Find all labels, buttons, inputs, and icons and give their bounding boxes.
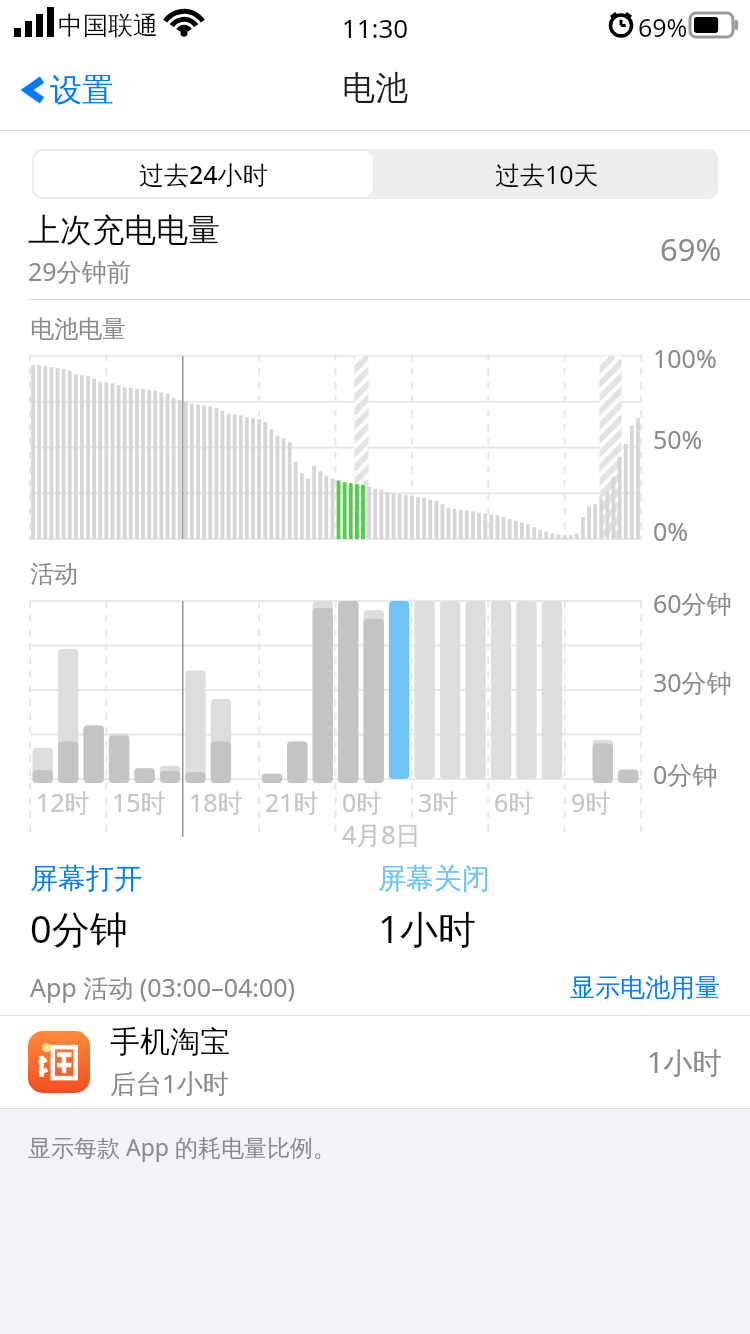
staticText: 电池电量 bbox=[30, 314, 126, 344]
staticText: 18时 bbox=[189, 785, 243, 819]
staticText: 30分钟 bbox=[653, 665, 732, 699]
staticText: 后台1小时 bbox=[110, 1065, 229, 1101]
staticText: 69% bbox=[638, 10, 688, 44]
staticText: 11:30 bbox=[0, 10, 750, 45]
button[interactable]: 设置 bbox=[18, 64, 120, 116]
button[interactable]: 过去10天 bbox=[375, 149, 718, 199]
staticText: 0分钟 bbox=[30, 902, 128, 954]
staticText: 0% bbox=[653, 514, 689, 548]
staticText: 手机淘宝 bbox=[110, 1023, 230, 1061]
button[interactable]: 显示电池用量 bbox=[570, 972, 720, 1003]
staticText: 21时 bbox=[265, 785, 319, 819]
staticText: 6时 bbox=[494, 785, 534, 819]
staticText: 屏幕打开 bbox=[30, 861, 142, 896]
staticText: 0时 bbox=[342, 785, 382, 819]
staticText: 设置 bbox=[50, 70, 114, 110]
staticText: 29分钟前 bbox=[28, 254, 132, 288]
staticText: 9时 bbox=[571, 785, 611, 819]
staticText: 50% bbox=[653, 422, 703, 456]
button[interactable]: 手机淘宝 bbox=[0, 1016, 750, 1108]
staticText: 上次充电电量 bbox=[28, 210, 220, 250]
staticText: 4月8日 bbox=[342, 817, 421, 851]
staticText: 中国联通 bbox=[58, 10, 158, 41]
staticText: 1小时 bbox=[378, 902, 476, 954]
staticText: 电池 bbox=[342, 67, 408, 109]
button[interactable]: 过去24小时 bbox=[34, 151, 373, 197]
staticText: 屏幕关闭 bbox=[378, 861, 490, 896]
staticText: 100% bbox=[653, 341, 717, 375]
staticText: 60分钟 bbox=[653, 586, 732, 620]
staticText: 1小时 bbox=[647, 1042, 722, 1082]
staticText: 69% bbox=[660, 228, 722, 270]
staticText: 活动 bbox=[30, 559, 78, 589]
staticText: 0分钟 bbox=[653, 757, 718, 791]
staticText: 显示电池用量 bbox=[570, 972, 720, 1003]
staticText: 显示每款 App 的耗电量比例。 bbox=[28, 1131, 336, 1162]
staticText: 过去10天 bbox=[495, 157, 599, 191]
staticText: 过去24小时 bbox=[139, 157, 268, 191]
staticText: 15时 bbox=[112, 785, 166, 819]
staticText: App 活动 (03:00–04:00) bbox=[30, 970, 296, 1004]
staticText: 3时 bbox=[418, 785, 458, 819]
staticText: 12时 bbox=[36, 785, 90, 819]
